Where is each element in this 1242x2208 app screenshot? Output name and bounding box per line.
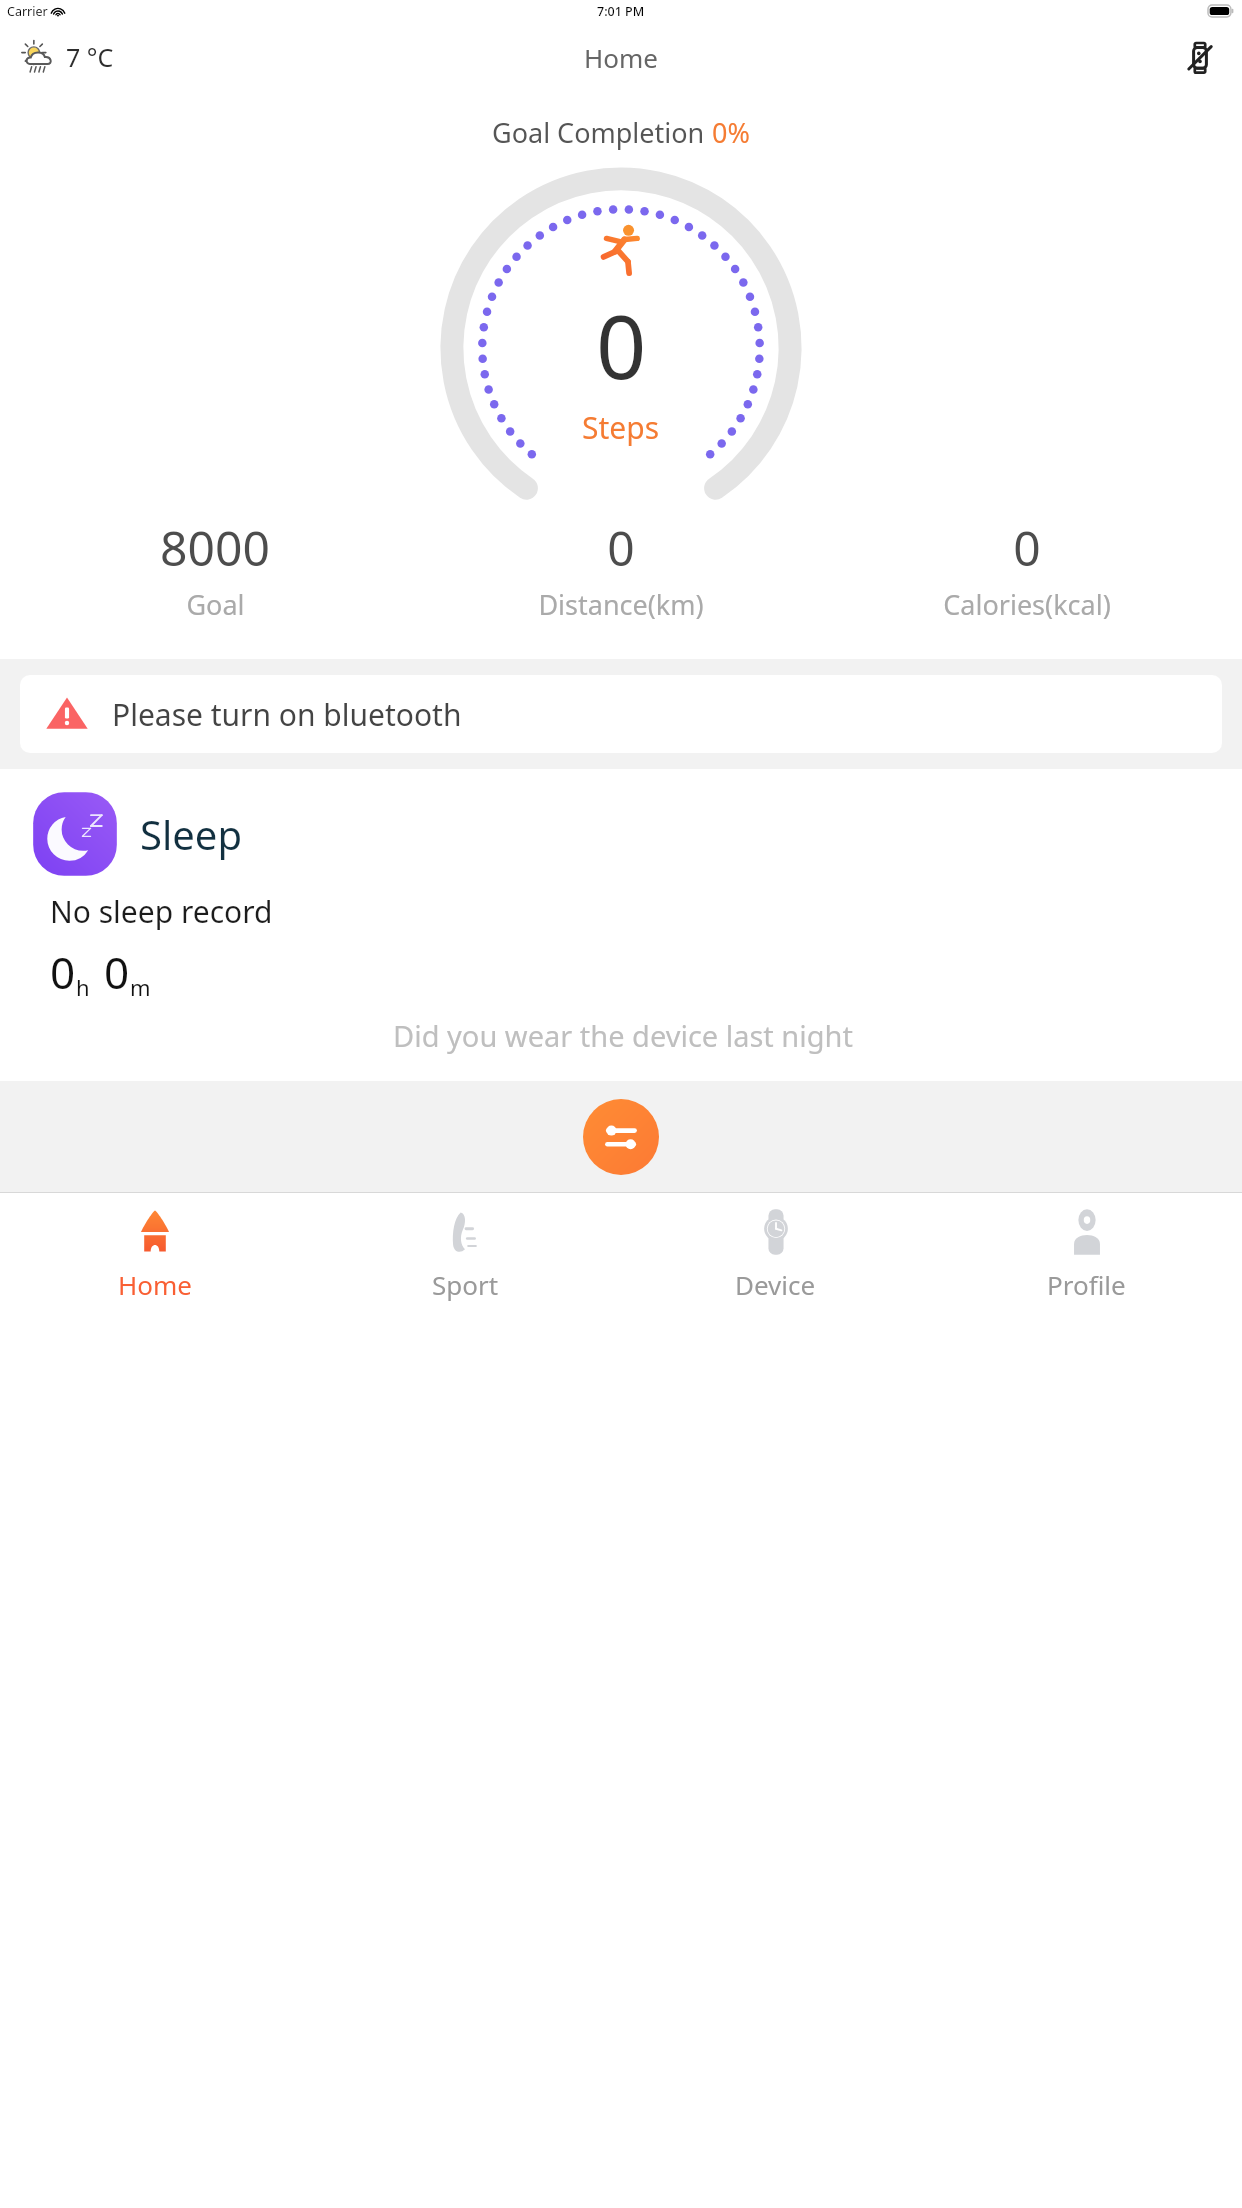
staticText: Sleep (140, 807, 242, 861)
button[interactable]: 0 (418, 511, 824, 627)
staticText: 7:01 PM (597, 3, 645, 20)
staticText: Sport (432, 1267, 499, 1302)
button[interactable]: Filters (583, 1099, 659, 1175)
button[interactable]: Profile (931, 1193, 1242, 1302)
staticText: 0 (596, 285, 647, 405)
staticText: Steps (582, 407, 660, 448)
button[interactable]: Please turn on bluetooth (20, 675, 1222, 753)
staticText: Device (735, 1267, 816, 1302)
staticText: 0% (712, 114, 750, 151)
staticText: Did you wear the device last night (28, 1016, 1218, 1055)
staticText: 8000 (160, 515, 270, 580)
staticText: Home (584, 40, 658, 75)
button[interactable]: 7 °C (12, 29, 120, 85)
button[interactable]: Sport (310, 1193, 620, 1302)
staticText: 0 (607, 515, 635, 580)
staticText: h (76, 972, 90, 1002)
staticText: Goal Completion (492, 114, 712, 151)
button[interactable]: 0 (824, 511, 1230, 627)
staticText: 0 (50, 942, 76, 1002)
staticText: m (130, 972, 151, 1002)
staticText: Carrier (7, 3, 48, 20)
staticText: 0 (1013, 515, 1041, 580)
staticText: 0 (104, 942, 130, 1002)
staticText: 7 °C (66, 40, 114, 74)
button[interactable]: 8000 (12, 511, 418, 627)
button[interactable]: Home (0, 1193, 310, 1302)
staticText: Please turn on bluetooth (112, 694, 462, 735)
staticText: Home (118, 1267, 192, 1302)
staticText: Distance(km) (538, 586, 704, 623)
button[interactable]: Device (620, 1193, 931, 1302)
staticText: No sleep record (50, 891, 273, 932)
button[interactable]: Device disconnected (1174, 31, 1226, 83)
button[interactable]: Sleep (0, 769, 1242, 1081)
staticText: Profile (1047, 1267, 1126, 1302)
staticText: Goal (186, 586, 245, 623)
staticText: Calories(kcal) (943, 586, 1111, 623)
